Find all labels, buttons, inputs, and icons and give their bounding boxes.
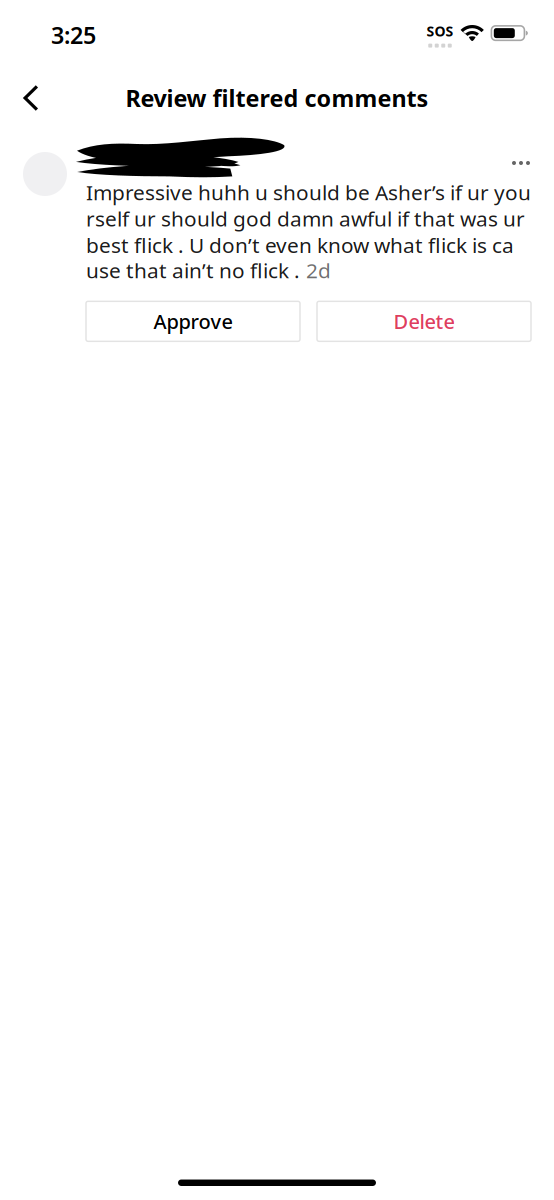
button[interactable]: Approve [86,301,300,341]
button[interactable]: Delete [317,301,531,341]
staticText: use that ain’t no flick . [86,256,300,284]
button[interactable]: More options [501,145,541,181]
staticText: 3:25 [51,19,96,51]
staticText: SOS [426,22,453,41]
staticText: Approve [153,308,232,335]
button[interactable]: Back [7,76,55,124]
staticText: 2d [306,256,331,284]
staticText: Impressive huhh u should be Asher’s if u… [86,178,531,259]
button[interactable]: Profile photo [23,152,67,196]
staticText: Review filtered comments [125,82,428,114]
staticText: Delete [393,308,454,335]
